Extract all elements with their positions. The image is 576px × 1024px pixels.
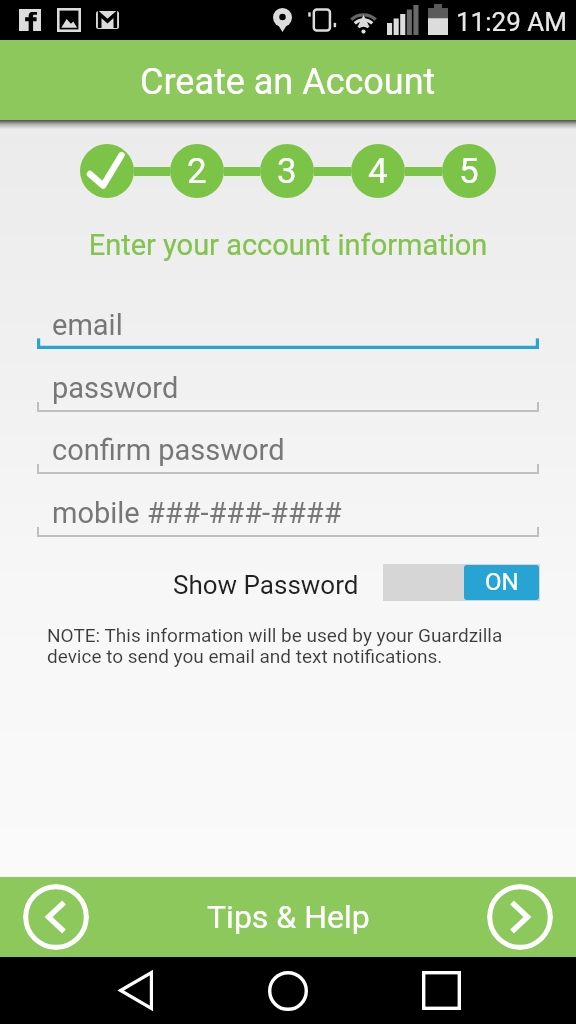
staticText: confirm password [52, 433, 285, 467]
staticText: Create an Account [140, 61, 436, 103]
staticText: email [52, 308, 123, 342]
staticText: 11:29 AM [456, 7, 567, 37]
staticText: 5 [459, 151, 479, 192]
staticText: 2 [187, 151, 207, 192]
staticText: Show Password [173, 570, 359, 600]
staticText: Enter your account information [0, 228, 576, 262]
staticText: 4 [368, 151, 388, 192]
staticText: 3 [277, 151, 297, 192]
button[interactable]: Home [262, 957, 314, 1024]
button[interactable]: Recents [415, 957, 467, 1024]
button[interactable]: Next [487, 884, 553, 950]
button[interactable]: ON [383, 564, 540, 601]
staticText: Tips & Help [207, 898, 370, 936]
staticText: NOTE: This information will be used by y… [47, 624, 503, 668]
button[interactable]: Previous [23, 884, 89, 950]
staticText: mobile ###-###-#### [52, 496, 342, 530]
staticText: ON [485, 568, 519, 596]
staticText: password [52, 371, 179, 405]
button[interactable]: Back [110, 957, 162, 1024]
